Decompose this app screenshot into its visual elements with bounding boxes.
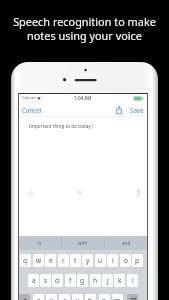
button[interactable]: i	[107, 254, 118, 267]
button[interactable]: r	[58, 254, 69, 267]
staticText: and	[122, 240, 131, 246]
button[interactable]: and	[105, 236, 147, 250]
staticText: c	[63, 296, 67, 300]
button[interactable]: Favourite	[27, 190, 34, 197]
button[interactable]: Share	[114, 103, 124, 117]
staticText: g	[80, 276, 85, 285]
button[interactable]: Save	[127, 103, 147, 117]
button[interactable]: h	[90, 274, 101, 287]
button[interactable]: v	[72, 294, 83, 300]
staticText: f	[69, 276, 72, 285]
button[interactable]: d	[52, 274, 63, 287]
staticText: b	[88, 296, 93, 300]
staticText: k	[118, 276, 122, 285]
staticText: y	[86, 256, 90, 265]
staticText: p	[135, 256, 140, 265]
button[interactable]: e	[45, 254, 56, 267]
button[interactable]: n	[99, 294, 110, 300]
button[interactable]: Dictate	[136, 189, 141, 197]
staticText: x	[50, 296, 54, 300]
staticText: z	[37, 296, 41, 300]
button[interactable]: a	[28, 274, 39, 287]
staticText: q	[23, 256, 28, 265]
staticText: Important thing to do today|	[29, 123, 94, 129]
button[interactable]: Backspace	[127, 294, 138, 300]
staticText: o	[124, 256, 128, 265]
button[interactable]: s	[40, 274, 51, 287]
staticText: d	[55, 276, 60, 285]
staticText: i	[112, 256, 114, 265]
button[interactable]: b	[85, 294, 96, 300]
staticText: h	[93, 276, 98, 285]
button[interactable]: Cancel	[19, 103, 45, 117]
staticText: t	[74, 256, 77, 265]
staticText: 280	[76, 190, 84, 196]
button[interactable]: z	[33, 294, 44, 300]
button[interactable]: g	[77, 274, 88, 287]
button[interactable]: p	[132, 254, 143, 267]
button[interactable]: l	[127, 274, 138, 287]
button[interactable]: w	[33, 254, 44, 267]
button[interactable]: with	[62, 236, 104, 250]
button[interactable]: x	[46, 294, 57, 300]
button[interactable]: c	[59, 294, 70, 300]
button[interactable]: u	[95, 254, 106, 267]
staticText: Speech recognition to make notes using y…	[0, 14, 169, 43]
staticText: Save	[130, 106, 144, 114]
button[interactable]: k	[114, 274, 125, 287]
staticText: w	[36, 256, 42, 265]
button[interactable]: y	[82, 254, 93, 267]
staticText: n	[102, 296, 107, 300]
staticText: j	[107, 276, 109, 285]
staticText: 1:04 AM	[74, 95, 92, 101]
button[interactable]: o	[120, 254, 131, 267]
button[interactable]: Important thing to do today|	[19, 118, 147, 180]
staticText: u	[98, 256, 103, 265]
button[interactable]: m	[112, 294, 123, 300]
staticText: m	[114, 296, 121, 300]
button[interactable]: f	[65, 274, 76, 287]
staticText: is	[38, 240, 42, 246]
staticText: v	[76, 296, 80, 300]
staticText: a	[32, 276, 36, 285]
button[interactable]: is	[19, 236, 61, 250]
staticText: Cancel	[22, 106, 42, 114]
button[interactable]: j	[102, 274, 113, 287]
button[interactable]: Shift	[19, 294, 30, 300]
button[interactable]: t	[70, 254, 81, 267]
staticText: Carrier	[22, 95, 36, 101]
button[interactable]: q	[20, 254, 31, 267]
staticText: e	[49, 256, 53, 265]
staticText: s	[44, 276, 48, 285]
staticText: r	[62, 256, 65, 265]
staticText: l	[132, 276, 134, 285]
staticText: with	[78, 240, 88, 246]
